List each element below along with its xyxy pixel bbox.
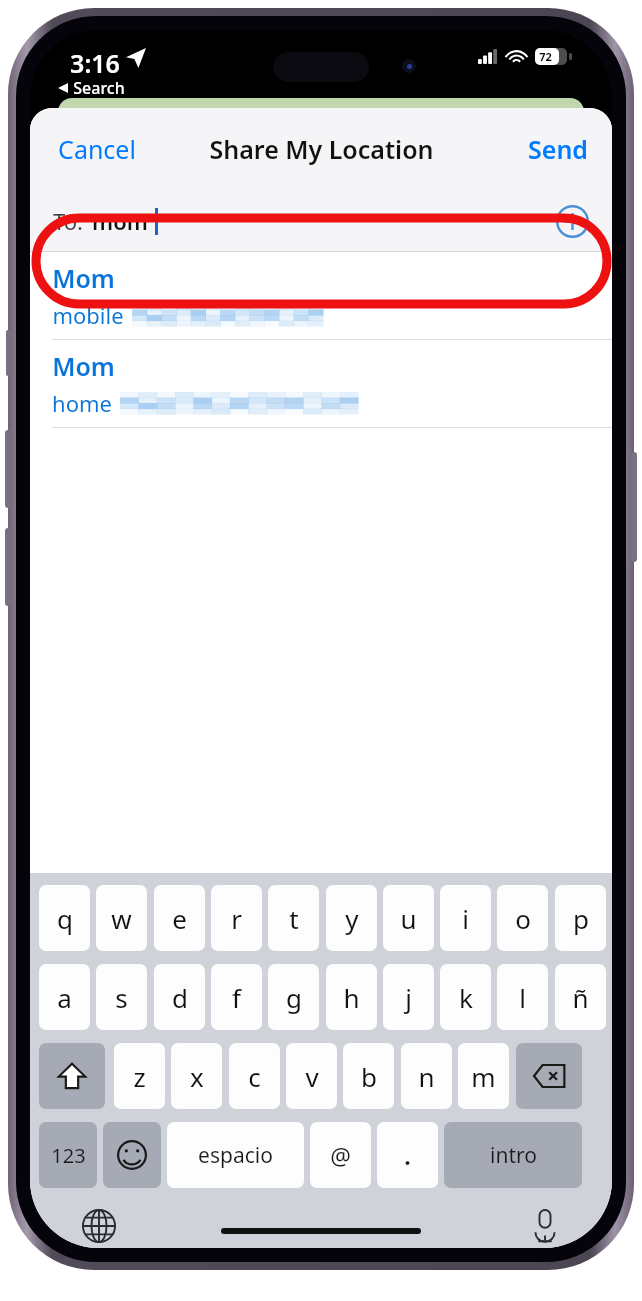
button[interactable]: v (286, 1043, 337, 1109)
button[interactable]: Shift (39, 1043, 105, 1109)
button[interactable]: k (440, 964, 491, 1030)
staticText: Search (73, 77, 125, 99)
staticText: 123 (51, 1142, 86, 1169)
button[interactable]: y (326, 885, 377, 951)
staticText: a (57, 980, 72, 1015)
staticText: Mom (52, 349, 115, 383)
button[interactable]: Mom (30, 340, 612, 427)
staticText: g (286, 980, 302, 1015)
staticText: b (361, 1059, 377, 1094)
staticText: @ (330, 1140, 351, 1171)
staticText: v (305, 1059, 319, 1094)
staticText: ñ (572, 980, 589, 1015)
staticText: 3:16 (70, 46, 120, 80)
button[interactable]: n (401, 1043, 452, 1109)
staticText: k (459, 980, 473, 1015)
staticText: w (111, 901, 132, 936)
button[interactable]: l (497, 964, 548, 1030)
button[interactable]: b (343, 1043, 394, 1109)
staticText: y (345, 901, 359, 936)
staticText: u (400, 901, 417, 936)
button[interactable]: p (555, 885, 606, 951)
staticText: j (405, 980, 412, 1015)
button[interactable]: h (326, 964, 377, 1030)
staticText: z (133, 1059, 146, 1094)
button[interactable]: Cancel (30, 120, 164, 178)
staticText: home (52, 388, 112, 418)
staticText: s (115, 980, 128, 1015)
button[interactable]: q (39, 885, 90, 951)
button[interactable]: i (440, 885, 491, 951)
staticText: o (515, 901, 531, 936)
staticText: Share My Location (209, 132, 434, 166)
button[interactable]: 123 (39, 1122, 97, 1188)
staticText: intro (490, 1141, 537, 1170)
staticText: espacio (198, 1141, 273, 1170)
button[interactable]: @ (310, 1122, 371, 1188)
button[interactable]: g (268, 964, 319, 1030)
button[interactable]: Mom (30, 252, 612, 339)
button[interactable]: . (377, 1122, 438, 1188)
button[interactable]: s (96, 964, 147, 1030)
staticText: i (462, 901, 469, 936)
button[interactable]: r (211, 885, 262, 951)
button[interactable]: d (154, 964, 205, 1030)
staticText: t (289, 901, 299, 936)
staticText: p (573, 901, 589, 936)
button[interactable]: intro (444, 1122, 582, 1188)
button[interactable]: m (458, 1043, 509, 1109)
button[interactable]: Emoji (103, 1122, 161, 1188)
button[interactable]: j (383, 964, 434, 1030)
staticText: r (231, 901, 242, 936)
button[interactable]: f (211, 964, 262, 1030)
staticText: f (232, 980, 241, 1015)
button[interactable]: Dictation (522, 1203, 568, 1248)
button[interactable]: Add contact (550, 199, 594, 243)
staticText: d (172, 980, 188, 1015)
staticText: mobile (52, 300, 124, 330)
button[interactable]: t (268, 885, 319, 951)
button[interactable]: Search (54, 75, 129, 101)
staticText: Cancel (58, 132, 136, 166)
staticText: To: (53, 206, 83, 236)
button[interactable]: o (497, 885, 548, 951)
button[interactable]: w (96, 885, 147, 951)
staticText: mom (92, 206, 148, 236)
staticText: n (418, 1059, 435, 1094)
staticText: l (519, 980, 526, 1015)
staticText: 72 (539, 49, 552, 64)
button[interactable]: a (39, 964, 90, 1030)
staticText: h (343, 980, 360, 1015)
button[interactable]: Change keyboard (76, 1203, 122, 1248)
button[interactable]: x (171, 1043, 222, 1109)
staticText: q (57, 901, 73, 936)
button[interactable]: Backspace (516, 1043, 582, 1109)
staticText: Send (528, 132, 588, 166)
staticText: m (471, 1059, 496, 1094)
staticText: x (190, 1059, 204, 1094)
button[interactable]: u (383, 885, 434, 951)
staticText: . (404, 1140, 411, 1171)
staticText: e (172, 901, 187, 936)
button[interactable]: c (229, 1043, 280, 1109)
button[interactable]: Send (504, 120, 612, 178)
staticText: c (248, 1059, 261, 1094)
staticText: Mom (52, 261, 115, 295)
button[interactable]: e (154, 885, 205, 951)
button[interactable]: z (114, 1043, 165, 1109)
button[interactable]: espacio (167, 1122, 304, 1188)
button[interactable]: ñ (555, 964, 606, 1030)
